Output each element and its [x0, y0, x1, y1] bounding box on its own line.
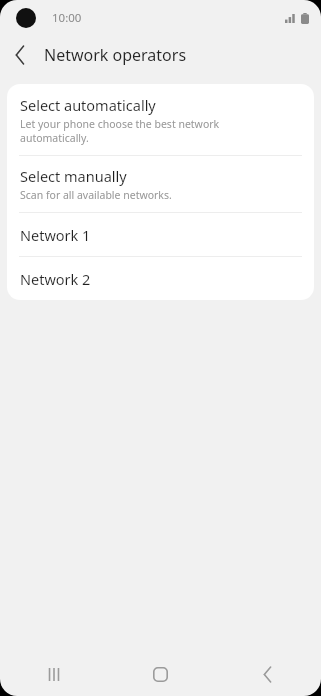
staticText: Scan for all available networks. — [20, 188, 172, 202]
staticText: Network 1 — [20, 225, 91, 245]
staticText: Select manually — [20, 166, 127, 186]
button[interactable]: Back — [0, 36, 40, 74]
staticText: Let your phone choose the best network a… — [20, 117, 220, 145]
button[interactable]: Home — [107, 652, 214, 696]
button[interactable]: Back — [214, 652, 321, 696]
button[interactable]: Select automatically — [7, 84, 314, 155]
staticText: Select automatically — [20, 95, 156, 115]
button[interactable]: Recents — [0, 652, 107, 696]
button[interactable]: Network 1 — [7, 213, 314, 256]
button[interactable]: Network 2 — [7, 257, 314, 300]
staticText: Network operators — [44, 44, 187, 66]
button[interactable]: Select manually — [7, 156, 314, 212]
staticText: 10:00 — [52, 10, 82, 26]
staticText: Network 2 — [20, 269, 91, 289]
